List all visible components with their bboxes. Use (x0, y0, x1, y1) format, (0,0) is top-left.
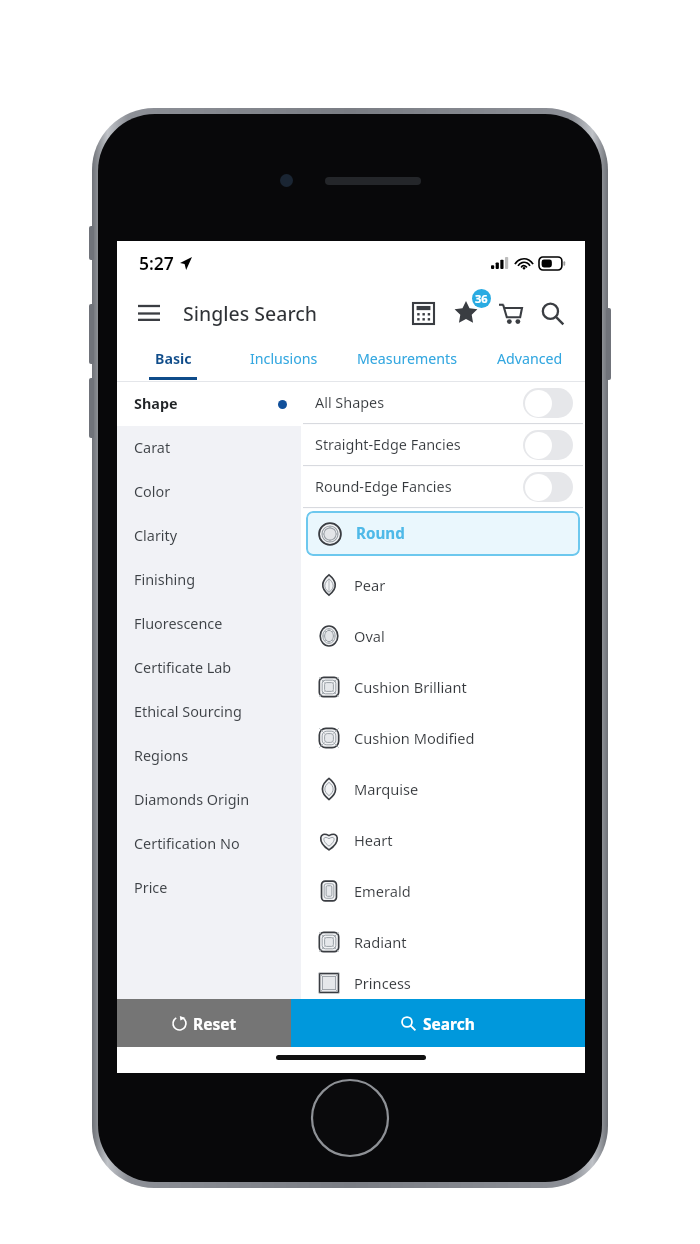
button[interactable]: Shape (117, 382, 301, 426)
staticText: Singles Search (183, 300, 318, 327)
staticText: Ethical Sourcing (134, 702, 242, 722)
staticText: Inclusions (250, 349, 318, 368)
staticText: Price (134, 878, 168, 898)
button[interactable]: Princess (301, 967, 585, 999)
button[interactable]: Price (117, 866, 301, 910)
button[interactable]: Shopping cart (489, 292, 531, 334)
button[interactable]: Oval (301, 610, 585, 661)
button[interactable]: Basic (117, 341, 228, 381)
button[interactable]: Heart (301, 814, 585, 865)
button[interactable]: Cushion Brilliant (301, 661, 585, 712)
staticText: Princess (354, 973, 411, 993)
button[interactable]: Calculator (403, 293, 443, 333)
button[interactable]: Fluorescence (117, 602, 301, 646)
button[interactable]: Round-Edge Fancies (301, 466, 585, 508)
staticText: Straight-Edge Fancies (315, 435, 461, 455)
staticText: Emerald (354, 881, 411, 901)
staticText: Measurements (357, 349, 457, 368)
staticText: Pear (354, 575, 386, 595)
button[interactable]: Certification No (117, 822, 301, 866)
staticText: Heart (354, 830, 393, 850)
staticText: Round-Edge Fancies (315, 477, 452, 497)
staticText: Cushion Brilliant (354, 677, 467, 697)
button[interactable]: Advanced (474, 341, 585, 381)
staticText: Oval (354, 626, 385, 646)
button[interactable]: Diamonds Origin (117, 778, 301, 822)
staticText: 36 (475, 291, 488, 306)
staticText: Round (356, 523, 405, 544)
button[interactable]: Reset (117, 999, 291, 1047)
button[interactable]: Ethical Sourcing (117, 690, 301, 734)
button[interactable]: Pear (301, 559, 585, 610)
button[interactable]: Search (291, 999, 585, 1047)
staticText: Basic (155, 349, 192, 368)
staticText: Advanced (497, 349, 563, 368)
button[interactable]: Open navigation menu (127, 291, 171, 335)
button[interactable]: Color (117, 470, 301, 514)
staticText: Diamonds Origin (134, 790, 250, 810)
button[interactable]: Round (306, 511, 580, 556)
button[interactable]: Search (531, 292, 573, 334)
staticText: Fluorescence (134, 614, 223, 634)
button[interactable]: Marquise (301, 763, 585, 814)
button[interactable]: All Shapes (301, 382, 585, 424)
staticText: Marquise (354, 779, 419, 799)
button[interactable]: Radiant (301, 916, 585, 967)
staticText: Certificate Lab (134, 658, 232, 678)
button[interactable]: Regions (117, 734, 301, 778)
staticText: Carat (134, 438, 171, 458)
staticText: Certification No (134, 834, 240, 854)
staticText: Regions (134, 746, 189, 766)
staticText: Finishing (134, 570, 196, 590)
staticText: Reset (193, 1013, 237, 1034)
button[interactable]: Straight-Edge Fancies (301, 424, 585, 466)
staticText: All Shapes (315, 393, 385, 413)
button[interactable]: Finishing (117, 558, 301, 602)
staticText: Shape (134, 394, 178, 414)
staticText: Color (134, 482, 171, 502)
button[interactable]: Cushion Modified (301, 712, 585, 763)
button[interactable]: Measurements (339, 341, 474, 381)
button[interactable]: Inclusions (228, 341, 339, 381)
button[interactable]: Clarity (117, 514, 301, 558)
staticText: 5:27 (139, 251, 174, 275)
staticText: Radiant (354, 932, 407, 952)
staticText: Clarity (134, 526, 178, 546)
button[interactable]: Certificate Lab (117, 646, 301, 690)
button[interactable]: Emerald (301, 865, 585, 916)
button[interactable]: Favourites, 36 items (443, 290, 489, 336)
staticText: Cushion Modified (354, 728, 475, 748)
button[interactable]: Carat (117, 426, 301, 470)
staticText: Search (423, 1013, 475, 1034)
